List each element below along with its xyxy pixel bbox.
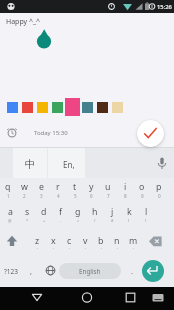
button[interactable] bbox=[137, 120, 164, 147]
button[interactable] bbox=[117, 179, 134, 203]
button[interactable] bbox=[83, 179, 100, 203]
staticText: 9 bbox=[141, 193, 144, 199]
staticText: 中 bbox=[25, 158, 36, 171]
button[interactable] bbox=[0, 259, 26, 283]
button[interactable] bbox=[22, 288, 52, 310]
button[interactable] bbox=[109, 231, 125, 255]
button[interactable] bbox=[133, 179, 150, 203]
staticText: m bbox=[129, 235, 138, 247]
button[interactable] bbox=[13, 148, 47, 178]
staticText: - bbox=[60, 218, 62, 223]
button[interactable] bbox=[36, 203, 53, 227]
button[interactable] bbox=[2, 203, 19, 227]
staticText: q bbox=[5, 181, 11, 193]
staticText: ' bbox=[53, 247, 54, 252]
button[interactable] bbox=[53, 203, 70, 227]
button[interactable] bbox=[93, 231, 109, 255]
staticText: . bbox=[131, 266, 134, 276]
staticText: f bbox=[59, 206, 63, 218]
staticText: h bbox=[92, 206, 98, 218]
button[interactable]: English bbox=[59, 263, 121, 279]
staticText: * bbox=[26, 218, 29, 223]
staticText: ' bbox=[37, 247, 38, 252]
staticText: = bbox=[77, 218, 80, 223]
button[interactable] bbox=[70, 203, 87, 227]
button[interactable] bbox=[16, 179, 33, 203]
staticText: # bbox=[111, 218, 114, 223]
staticText: g bbox=[75, 206, 81, 218]
staticText: w bbox=[21, 181, 28, 193]
button[interactable] bbox=[115, 288, 145, 310]
staticText: ' bbox=[85, 247, 86, 252]
button[interactable] bbox=[138, 203, 155, 227]
staticText: 1 bbox=[7, 193, 10, 199]
staticText: z bbox=[35, 235, 40, 247]
staticText: ' bbox=[133, 247, 134, 252]
button[interactable] bbox=[4, 123, 104, 143]
button[interactable] bbox=[33, 179, 50, 203]
button[interactable] bbox=[48, 148, 85, 178]
button[interactable] bbox=[142, 260, 164, 282]
button[interactable] bbox=[150, 179, 167, 203]
button[interactable] bbox=[42, 259, 58, 283]
staticText: t bbox=[73, 181, 77, 193]
staticText: a bbox=[8, 206, 13, 218]
button[interactable] bbox=[61, 231, 77, 255]
staticText: j bbox=[111, 206, 114, 218]
staticText: / bbox=[94, 218, 96, 223]
staticText: s bbox=[25, 206, 30, 218]
staticText: 4 bbox=[57, 193, 60, 199]
staticText: ' bbox=[101, 247, 102, 252]
staticText: c bbox=[67, 235, 72, 247]
button[interactable] bbox=[29, 231, 45, 255]
staticText: r bbox=[56, 181, 60, 193]
staticText: ) bbox=[145, 218, 147, 223]
button[interactable] bbox=[72, 288, 102, 310]
button[interactable] bbox=[121, 203, 138, 227]
staticText: d bbox=[41, 206, 47, 218]
staticText: 6 bbox=[90, 193, 93, 199]
staticText: Today 15:30 bbox=[34, 129, 68, 137]
staticText: i bbox=[124, 181, 127, 193]
staticText: 7 bbox=[107, 193, 110, 199]
button[interactable] bbox=[66, 179, 83, 203]
staticText: + bbox=[43, 218, 46, 223]
button[interactable]: . bbox=[110, 261, 154, 281]
staticText: b bbox=[98, 235, 104, 247]
staticText: e bbox=[39, 181, 44, 193]
staticText: ' bbox=[117, 247, 118, 252]
button[interactable] bbox=[45, 231, 61, 255]
button[interactable] bbox=[2, 231, 26, 255]
staticText: x bbox=[51, 235, 56, 247]
staticText: 3 bbox=[40, 193, 43, 199]
button[interactable] bbox=[0, 179, 16, 203]
button[interactable] bbox=[87, 203, 104, 227]
staticText: k bbox=[127, 206, 132, 218]
button[interactable] bbox=[100, 179, 117, 203]
button[interactable] bbox=[19, 203, 36, 227]
button[interactable] bbox=[104, 203, 121, 227]
staticText: v bbox=[83, 235, 88, 247]
button[interactable] bbox=[146, 231, 172, 255]
staticText: 15:26 bbox=[157, 3, 172, 11]
staticText: 2 bbox=[23, 193, 26, 199]
staticText: , bbox=[30, 266, 33, 276]
button[interactable] bbox=[49, 179, 66, 203]
button[interactable] bbox=[77, 231, 93, 255]
button[interactable]: , bbox=[9, 261, 53, 281]
staticText: Happy ^_^ bbox=[6, 17, 41, 27]
button[interactable] bbox=[125, 231, 141, 255]
staticText: 5 bbox=[74, 193, 77, 199]
button[interactable] bbox=[148, 288, 170, 310]
staticText: o bbox=[139, 181, 145, 193]
staticText: 0 bbox=[158, 193, 161, 199]
staticText: l bbox=[145, 206, 148, 218]
